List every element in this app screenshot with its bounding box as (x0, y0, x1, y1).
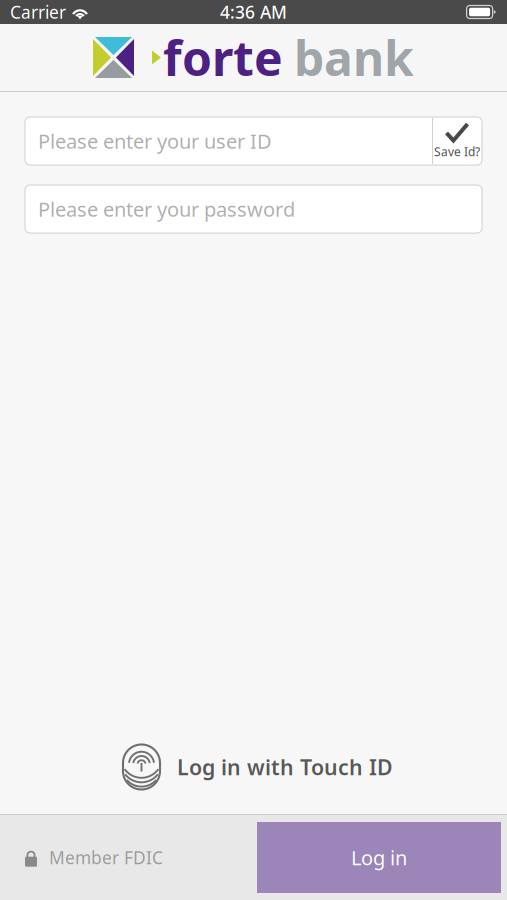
staticText: Carrier (10, 0, 66, 23)
button[interactable]: Save Id (432, 118, 482, 164)
staticText: 4:36 AM (220, 0, 287, 23)
staticText: Please enter your user ID (38, 128, 272, 154)
button[interactable]: Log in (257, 822, 501, 893)
button[interactable]: Log in with Touch ID (0, 720, 507, 814)
staticText: forte (163, 26, 283, 89)
staticText: bank (294, 26, 414, 89)
staticText: Please enter your password (38, 196, 295, 222)
staticText: Log in with Touch ID (177, 753, 393, 781)
staticText: Member FDIC (49, 846, 163, 869)
staticText: Save Id? (434, 143, 480, 159)
staticText: Log in (351, 844, 407, 871)
button[interactable]: Please enter your password (0, 185, 507, 233)
button[interactable]: Please enter your user ID (25, 117, 432, 165)
